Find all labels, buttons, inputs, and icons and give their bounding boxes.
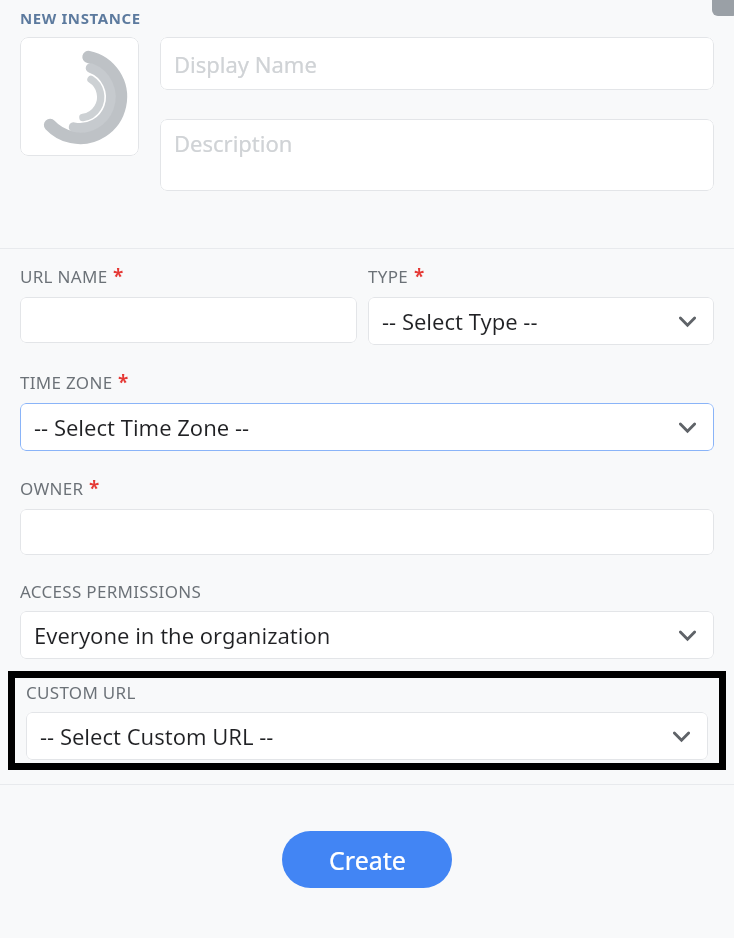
staticText: Create bbox=[329, 843, 406, 877]
button[interactable] bbox=[20, 37, 139, 156]
other: Open dropdown bbox=[674, 308, 700, 334]
staticText: NEW INSTANCE bbox=[20, 8, 141, 28]
staticText: Display Name bbox=[174, 49, 317, 79]
staticText: Everyone in the organization bbox=[34, 620, 331, 650]
staticText: Description bbox=[174, 128, 293, 158]
staticText: URL NAME bbox=[20, 265, 108, 288]
other: Open dropdown bbox=[674, 622, 700, 648]
button[interactable]: Description bbox=[160, 119, 714, 191]
button[interactable] bbox=[20, 297, 357, 343]
staticText: TYPE bbox=[368, 265, 409, 288]
staticText: -- Select Time Zone -- bbox=[34, 412, 250, 442]
button[interactable]: Display Name bbox=[160, 37, 714, 90]
staticText: -- Select Type -- bbox=[382, 306, 538, 336]
button[interactable]: Create bbox=[282, 831, 452, 888]
other: Open dropdown bbox=[674, 414, 700, 440]
staticText: * bbox=[414, 263, 425, 289]
other: Open dropdown bbox=[668, 723, 694, 749]
staticText: OWNER bbox=[20, 477, 84, 500]
button[interactable] bbox=[20, 509, 714, 555]
staticText: * bbox=[118, 369, 129, 395]
staticText: * bbox=[113, 263, 124, 289]
button[interactable]: -- Select Time Zone -- bbox=[20, 403, 714, 451]
button[interactable]: Everyone in the organization bbox=[20, 611, 714, 659]
button[interactable]: -- Select Custom URL -- bbox=[26, 712, 708, 760]
staticText: TIME ZONE bbox=[20, 371, 113, 394]
staticText: * bbox=[89, 475, 100, 501]
staticText: CUSTOM URL bbox=[26, 681, 136, 704]
button[interactable]: -- Select Type -- bbox=[368, 297, 714, 345]
staticText: -- Select Custom URL -- bbox=[40, 721, 274, 751]
staticText: ACCESS PERMISSIONS bbox=[20, 580, 202, 603]
